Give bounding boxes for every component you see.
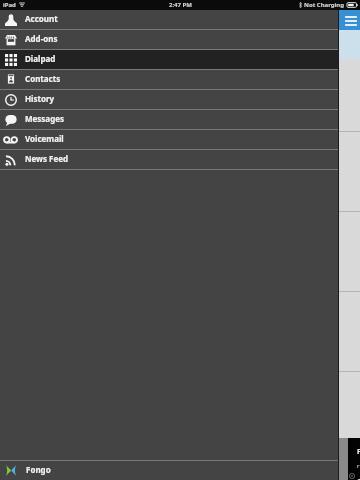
staticText: F (357, 447, 360, 457)
button[interactable]: News Feed (0, 150, 339, 169)
staticText: 2:47 PM (169, 1, 192, 9)
button[interactable]: Voicemail (0, 130, 339, 149)
button[interactable]: Dialpad (0, 50, 339, 69)
staticText: Add-ons (25, 33, 58, 44)
button[interactable]: Add-ons (0, 30, 339, 49)
button[interactable]: History (0, 90, 339, 109)
button[interactable]: Account (0, 10, 339, 29)
staticText: Dialpad (25, 53, 56, 64)
staticText: Fongo (26, 464, 51, 475)
staticText: Not Charging (304, 1, 345, 9)
staticText: Account (25, 13, 58, 24)
staticText: r (357, 462, 360, 470)
button[interactable]: Messages (0, 110, 339, 129)
staticText: Contacts (25, 73, 61, 84)
staticText: Voicemail (25, 133, 64, 144)
staticText: Messages (25, 113, 64, 124)
staticText: History (25, 93, 55, 104)
staticText: iPad (3, 1, 16, 9)
button[interactable]: Open navigation menu (345, 15, 357, 26)
button[interactable]: Contacts (0, 70, 339, 89)
staticText: News Feed (25, 153, 69, 164)
button[interactable]: Fongo (0, 461, 339, 480)
staticText: C (357, 477, 360, 480)
